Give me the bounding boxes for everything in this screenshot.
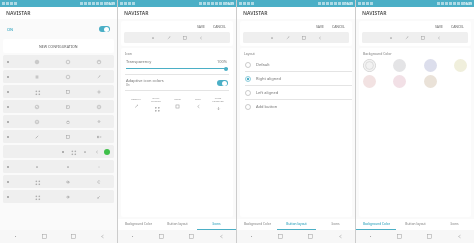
button[interactable]: Icons	[435, 219, 474, 230]
button[interactable]: Button layout	[277, 219, 316, 230]
button[interactable]: RECENTS	[127, 94, 145, 114]
button[interactable]	[7, 130, 110, 143]
button[interactable]	[7, 55, 110, 68]
button[interactable]: Background Color	[118, 219, 158, 230]
button[interactable]	[7, 145, 110, 158]
staticText: Layout	[244, 51, 255, 56]
button[interactable]: Color swatch	[454, 59, 467, 72]
staticText: Background Color	[244, 222, 271, 226]
staticText: Left aligned	[256, 90, 279, 95]
button[interactable]: Background Color	[356, 219, 396, 230]
button[interactable]: Color swatch	[393, 59, 406, 72]
staticText: RECENTS	[131, 98, 141, 101]
staticText: Background Color	[363, 222, 390, 226]
button[interactable]: Icons	[197, 219, 236, 230]
button[interactable]: recents	[30, 230, 59, 243]
button[interactable]: recents	[147, 230, 176, 243]
button[interactable]: NEW CONFIGURATION	[3, 39, 114, 53]
button[interactable]: Toggle	[99, 26, 110, 32]
button[interactable]	[7, 115, 110, 128]
staticText: NAVISTAR	[243, 10, 268, 17]
button[interactable]: home	[59, 230, 88, 243]
button[interactable]: Color swatch	[424, 59, 437, 72]
button[interactable]: Color swatch	[393, 75, 406, 88]
button[interactable]: Left aligned	[245, 86, 347, 99]
staticText: Button layout	[286, 222, 307, 226]
button[interactable]: dot	[0, 230, 30, 243]
staticText: 100%	[217, 59, 228, 64]
button[interactable]: Button layout	[396, 219, 435, 230]
staticText: Add button	[256, 104, 278, 109]
button[interactable]	[7, 85, 110, 98]
button[interactable]: HOME	[168, 94, 186, 114]
staticText: Button layout	[167, 222, 188, 226]
button[interactable]: Color swatch	[424, 75, 437, 88]
button[interactable]: back	[444, 230, 474, 243]
button[interactable]: Color swatch	[363, 59, 376, 72]
staticText: NEW CONFIGURATION	[39, 44, 78, 49]
staticText: Adaptive icon colors	[126, 78, 164, 83]
button[interactable]: recents	[266, 230, 295, 243]
button[interactable]: dot	[118, 230, 147, 243]
staticText: BACK	[195, 98, 201, 101]
staticText: 16:39	[464, 2, 472, 6]
staticText: Right aligned	[256, 76, 281, 81]
button[interactable]: back	[325, 230, 355, 243]
button[interactable]: home	[176, 230, 206, 243]
button[interactable]: CANCEL	[211, 24, 228, 29]
button[interactable]: Default	[245, 58, 347, 71]
staticText: 16:39	[226, 2, 234, 6]
button[interactable]: dot	[356, 230, 385, 243]
staticText: SAVE	[316, 24, 324, 29]
staticText: Icons	[450, 222, 459, 226]
button[interactable]: back	[88, 230, 117, 243]
button[interactable]: SAVE	[195, 24, 207, 29]
button[interactable]: home	[295, 230, 325, 243]
staticText: Icon	[125, 51, 132, 56]
staticText: Button layout	[405, 222, 426, 226]
button[interactable]: CLOSE KEYBOARD	[209, 94, 227, 114]
staticText: Background Color	[125, 222, 152, 226]
button[interactable]: Add button	[245, 100, 347, 113]
button[interactable]: Icons	[316, 219, 355, 230]
button[interactable]: ON	[7, 21, 110, 37]
button[interactable]: Button layout	[158, 219, 197, 230]
button[interactable]: home	[414, 230, 444, 243]
button[interactable]: Toggle	[217, 80, 228, 86]
button[interactable]: MULTI- WINDOW	[147, 94, 165, 114]
button[interactable]: back	[206, 230, 236, 243]
button[interactable]: SAVE	[433, 24, 445, 29]
staticText: SAVE	[435, 24, 443, 29]
button[interactable]: Transparency slider	[126, 66, 228, 71]
staticText: HOME	[174, 98, 181, 101]
staticText: ON	[7, 27, 14, 32]
staticText: Background Color	[363, 51, 392, 56]
staticText: SAVE	[197, 24, 205, 29]
button[interactable]: CANCEL	[330, 24, 347, 29]
staticText: Default	[256, 62, 270, 67]
button[interactable]: recents	[385, 230, 414, 243]
button[interactable]	[7, 175, 110, 188]
staticText: NAVISTAR	[362, 10, 387, 17]
button[interactable]	[7, 100, 110, 113]
staticText: CLOSE KEYBOARD	[212, 97, 224, 103]
button[interactable]: Background Color	[237, 219, 277, 230]
button[interactable]: BACK	[189, 94, 207, 114]
staticText: MULTI- WINDOW	[151, 97, 161, 103]
button[interactable]: SAVE	[314, 24, 326, 29]
staticText: NAVISTAR	[6, 10, 31, 17]
staticText: CANCEL	[451, 24, 464, 29]
button[interactable]: dot	[237, 230, 266, 243]
staticText: Icons	[212, 222, 221, 226]
staticText: 16:39	[107, 2, 115, 6]
staticText: NAVISTAR	[124, 10, 149, 17]
button[interactable]: Right aligned	[245, 72, 347, 85]
button[interactable]: Adaptive icon colors	[126, 78, 228, 87]
staticText: On	[126, 83, 130, 87]
button[interactable]	[7, 190, 110, 203]
button[interactable]: Color swatch	[363, 75, 376, 88]
button[interactable]: CANCEL	[449, 24, 466, 29]
button[interactable]	[7, 160, 110, 173]
button[interactable]	[7, 70, 110, 83]
staticText: CANCEL	[213, 24, 226, 29]
